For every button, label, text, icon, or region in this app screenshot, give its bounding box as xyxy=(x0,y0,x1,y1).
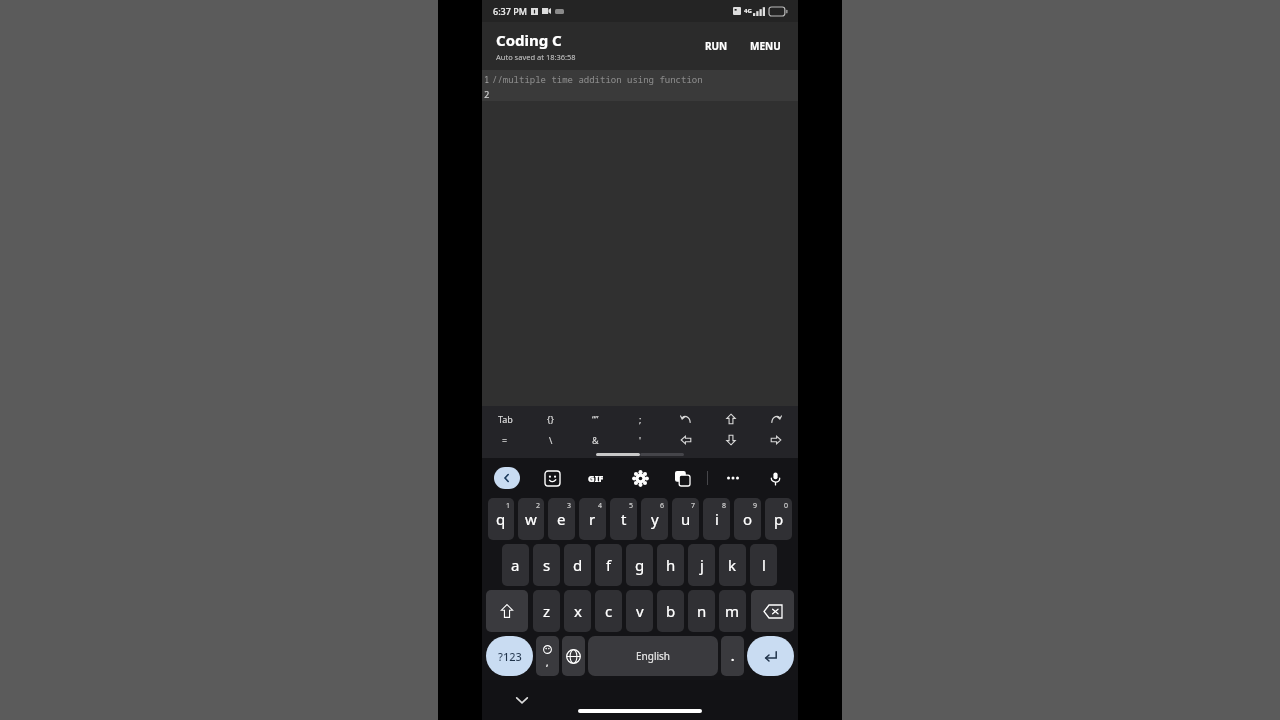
staticText: 2 xyxy=(536,501,541,511)
button[interactable]: MENU xyxy=(743,33,788,59)
staticText: v xyxy=(636,601,644,621)
button[interactable]: i xyxy=(703,498,730,540)
button[interactable]: l xyxy=(750,544,777,586)
button[interactable]: k xyxy=(719,544,746,586)
button[interactable]: q xyxy=(488,498,514,540)
button[interactable]: p xyxy=(765,498,792,540)
staticText: 2 xyxy=(484,88,490,100)
staticText: o xyxy=(743,509,753,529)
button[interactable]: Translate xyxy=(671,467,693,489)
button[interactable]: RUN xyxy=(698,33,735,59)
button[interactable]: h xyxy=(657,544,684,586)
staticText: r xyxy=(589,509,596,529)
staticText: p xyxy=(774,509,784,529)
button[interactable]: Editor key xyxy=(663,409,708,429)
button[interactable]: b xyxy=(657,590,684,632)
button[interactable]: Stickers xyxy=(541,467,563,489)
button[interactable]: e xyxy=(548,498,575,540)
staticText: m xyxy=(725,601,740,621)
button[interactable]: Settings xyxy=(629,467,651,489)
staticText: & xyxy=(592,434,599,446)
button[interactable]: Emoji and comma xyxy=(536,636,559,676)
staticText: ?123 xyxy=(498,649,522,664)
staticText: 7 xyxy=(691,501,696,511)
staticText: 1 xyxy=(506,501,511,511)
button[interactable]: g xyxy=(626,544,653,586)
staticText: 6 xyxy=(660,501,665,511)
staticText: , xyxy=(546,656,549,668)
button[interactable]: Editor key xyxy=(708,409,753,429)
staticText: 4 xyxy=(598,501,603,511)
staticText: Tab xyxy=(498,413,513,425)
staticText: 8 xyxy=(722,501,727,511)
staticText: “” xyxy=(592,413,599,425)
button[interactable]: ?123 xyxy=(486,636,533,676)
button[interactable]: ' xyxy=(618,429,663,451)
button[interactable]: Voice input xyxy=(764,467,786,489)
button[interactable]: f xyxy=(595,544,622,586)
button[interactable]: Editor key xyxy=(753,409,798,429)
button[interactable]: Hide keyboard xyxy=(510,688,534,712)
button[interactable]: y xyxy=(641,498,668,540)
button[interactable]: c xyxy=(595,590,622,632)
button[interactable]: More options xyxy=(722,467,744,489)
button[interactable]: Period xyxy=(721,636,744,676)
staticText: d xyxy=(573,555,583,575)
staticText: = xyxy=(502,434,508,446)
button[interactable]: Enter xyxy=(747,636,794,676)
button[interactable]: Editor key xyxy=(753,429,798,451)
button[interactable]: u xyxy=(672,498,699,540)
staticText: a xyxy=(511,555,520,575)
staticText: 4G xyxy=(744,7,752,15)
button[interactable]: j xyxy=(688,544,715,586)
button[interactable]: a xyxy=(502,544,529,586)
button[interactable]: d xyxy=(564,544,591,586)
button[interactable]: n xyxy=(688,590,715,632)
button[interactable]: = xyxy=(482,429,528,451)
staticText: c xyxy=(605,601,613,621)
button[interactable]: Editor key xyxy=(663,429,708,451)
button[interactable]: English xyxy=(588,636,718,676)
staticText: i xyxy=(715,509,719,529)
button[interactable]: ; xyxy=(618,409,663,429)
staticText: g xyxy=(635,555,645,575)
staticText: Auto saved at 18:36:58 xyxy=(496,52,576,62)
staticText: 5 xyxy=(629,501,634,511)
button[interactable]: Editor key xyxy=(708,429,753,451)
button[interactable]: & xyxy=(573,429,618,451)
staticText: z xyxy=(543,601,551,621)
button[interactable]: t xyxy=(610,498,637,540)
button[interactable]: r xyxy=(579,498,606,540)
staticText: l xyxy=(762,555,766,575)
button[interactable]: z xyxy=(533,590,560,632)
staticText: 6:37 PM xyxy=(493,5,527,17)
staticText: s xyxy=(543,555,551,575)
staticText: //multiple time addition using function xyxy=(492,73,703,85)
staticText: e xyxy=(557,509,566,529)
button[interactable]: Tab xyxy=(482,409,528,429)
staticText: {} xyxy=(547,413,554,425)
button[interactable]: Back xyxy=(494,467,520,489)
button[interactable]: Change language xyxy=(562,636,585,676)
button[interactable]: s xyxy=(533,544,560,586)
button[interactable]: o xyxy=(734,498,761,540)
button[interactable]: “” xyxy=(573,409,618,429)
staticText: 0 xyxy=(784,501,789,511)
staticText: 1 xyxy=(484,73,490,85)
button[interactable]: v xyxy=(626,590,653,632)
staticText: Coding C xyxy=(496,30,562,50)
button[interactable]: w xyxy=(518,498,544,540)
staticText: ' xyxy=(639,434,642,446)
staticText: RUN xyxy=(705,39,728,53)
staticText: q xyxy=(496,509,506,529)
button[interactable]: Backspace xyxy=(751,590,794,632)
button[interactable]: Shift xyxy=(486,590,528,632)
staticText: \ xyxy=(549,434,553,446)
button[interactable]: x xyxy=(564,590,591,632)
button[interactable]: \ xyxy=(528,429,573,451)
button[interactable]: {} xyxy=(528,409,573,429)
button[interactable]: GIF xyxy=(583,467,609,489)
button[interactable]: m xyxy=(719,590,746,632)
staticText: GIF xyxy=(588,472,604,484)
